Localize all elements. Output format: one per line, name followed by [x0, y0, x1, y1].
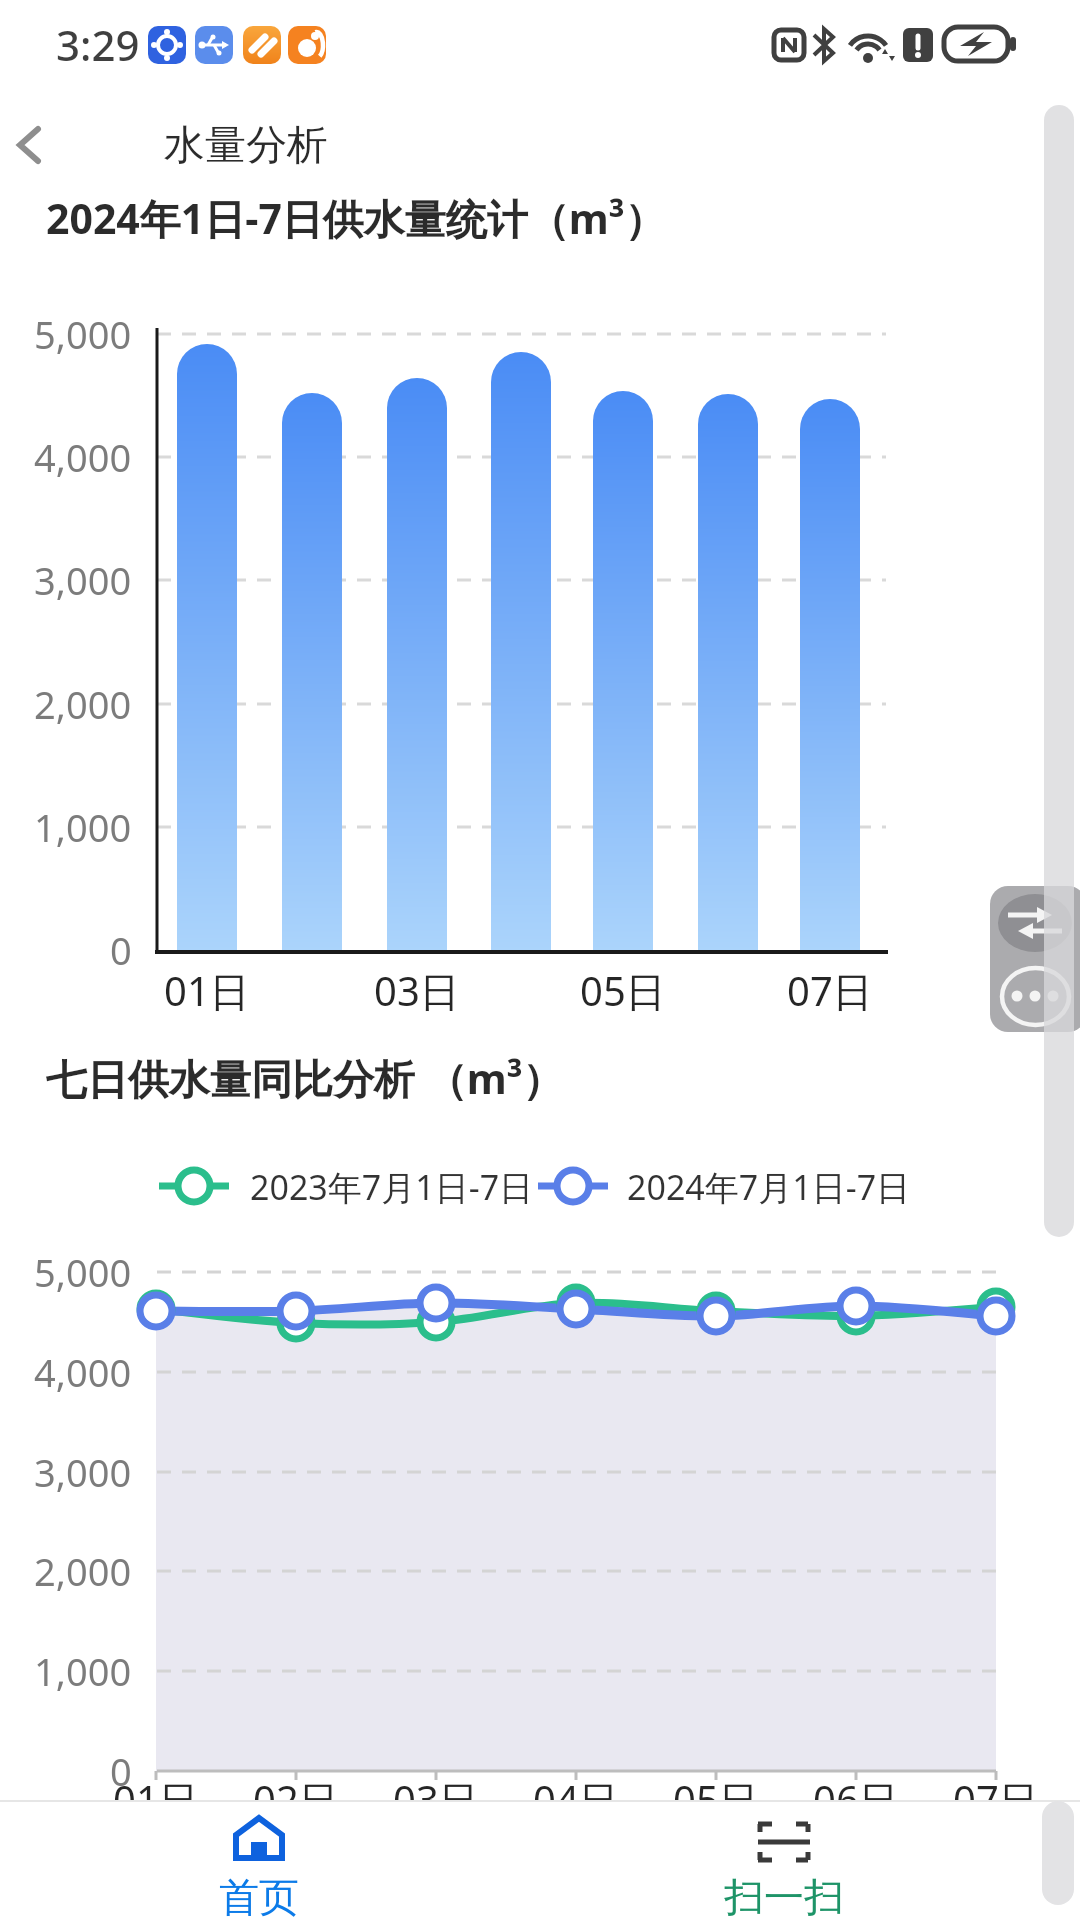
staticText: 5,000 — [34, 1246, 132, 1298]
button[interactable]: 扫一扫 — [714, 1802, 854, 1920]
staticText: 扫一扫 — [724, 1872, 844, 1920]
button[interactable] — [990, 886, 1080, 959]
staticText: 首页 — [219, 1872, 299, 1920]
staticText: 0 — [110, 1745, 132, 1797]
staticText: 02日 — [253, 1772, 339, 1816]
staticText: 06日 — [813, 1772, 899, 1816]
staticText: 5,000 — [34, 308, 132, 360]
button[interactable] — [16, 127, 42, 163]
staticText: 1,000 — [34, 801, 132, 853]
staticText: 2024年1日-7日供水量统计（m³） — [46, 190, 666, 246]
staticText: 01日 — [113, 1772, 199, 1816]
staticText: 05日 — [673, 1772, 759, 1816]
staticText: 01日 — [164, 963, 250, 1018]
staticText: 4,000 — [34, 1346, 132, 1398]
staticText: 2,000 — [34, 678, 132, 730]
staticText: 2,000 — [34, 1545, 132, 1597]
staticText: 04日 — [533, 1772, 619, 1816]
staticText: 七日供水量同比分析 （m³） — [46, 1050, 564, 1106]
button[interactable]: 首页 — [189, 1802, 329, 1920]
staticText: 3,000 — [34, 554, 132, 606]
staticText: 2023年7月1日-7日 — [250, 1164, 534, 1210]
button[interactable] — [990, 959, 1080, 1032]
staticText: 05日 — [580, 963, 666, 1018]
staticText: 1,000 — [34, 1645, 132, 1697]
staticText: 3,000 — [34, 1446, 132, 1498]
staticText: 03日 — [393, 1772, 479, 1816]
staticText: 03日 — [374, 963, 460, 1018]
staticText: 4,000 — [34, 431, 132, 483]
staticText: 0 — [110, 924, 132, 976]
staticText: 07日 — [787, 963, 873, 1018]
staticText: 水量分析 — [164, 120, 328, 172]
staticText: 07日 — [953, 1772, 1039, 1816]
staticText: 2024年7月1日-7日 — [627, 1164, 911, 1210]
staticText: 3:29 — [56, 16, 140, 73]
